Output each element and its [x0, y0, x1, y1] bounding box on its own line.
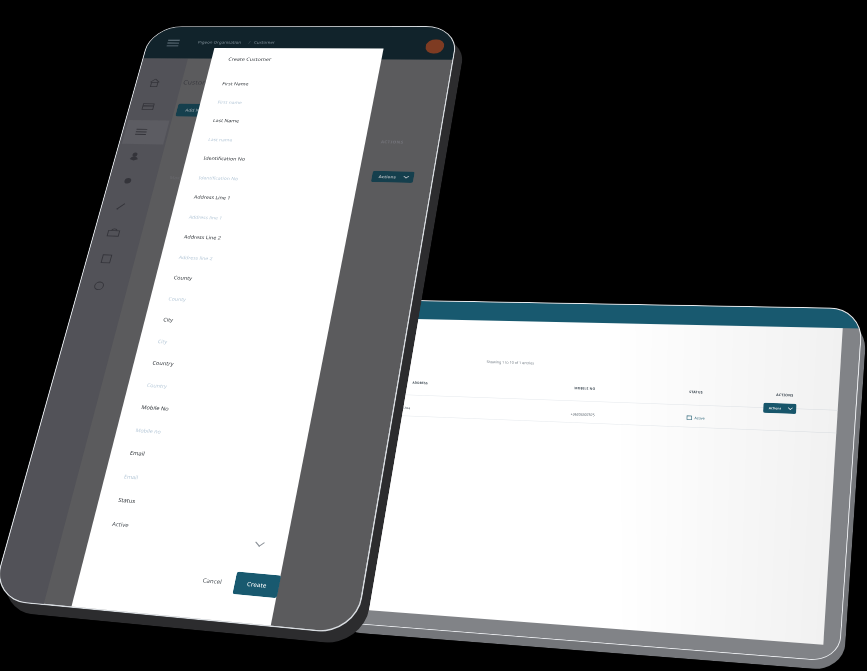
staticText: Country — [146, 382, 168, 389]
staticText: Cancel — [202, 576, 223, 586]
button[interactable]: Add New — [175, 103, 216, 117]
staticText: +36203307375 — [571, 412, 595, 417]
staticText: ADDRESS — [412, 380, 428, 385]
staticText: City — [162, 316, 174, 323]
staticText: 1, Sterndf Imre Utca — [379, 404, 410, 410]
staticText: Create — [246, 580, 267, 590]
staticText: CUSTOMER — [205, 141, 232, 146]
staticText: Identification No — [198, 175, 239, 181]
staticText: ACTIONS — [776, 392, 794, 398]
button[interactable]: Create — [232, 571, 281, 598]
staticText: Add New — [185, 107, 207, 113]
staticText: Actions — [769, 406, 781, 410]
button[interactable]: Sidebar item 1 — [138, 72, 171, 94]
staticText: ACTIONS — [380, 139, 404, 145]
button[interactable]: Sidebar item 8 — [89, 246, 124, 272]
staticText: Address Line 2 — [183, 233, 222, 241]
staticText: Address Line 1 — [193, 194, 231, 201]
button[interactable] — [306, 391, 838, 433]
staticText: Pigeon Organisation — [197, 40, 242, 45]
button[interactable]: Sidebar item 4 — [117, 145, 151, 169]
staticText: Email — [129, 449, 146, 458]
staticText: First Name — [222, 81, 249, 87]
staticText: Identification No — [203, 155, 246, 162]
staticText: County — [173, 274, 193, 282]
staticText: / — [248, 40, 251, 45]
staticText: First name — [217, 99, 243, 105]
staticText: Status — [117, 496, 136, 505]
staticText: Create Customer — [228, 56, 272, 62]
button[interactable]: Cancel — [194, 571, 231, 591]
staticText: Active — [111, 520, 130, 529]
staticText: STATUS — [689, 389, 703, 395]
staticText: Customer — [182, 78, 217, 86]
staticText: Showing 1 to 10 of 1 entries — [486, 359, 534, 365]
button[interactable]: Sidebar item 7 — [96, 220, 131, 245]
staticText: Address line 2 — [178, 254, 213, 261]
button[interactable]: Account — [424, 39, 445, 54]
other: Status dropdown — [255, 542, 264, 547]
staticText: Mobile No — [141, 403, 170, 412]
staticText: Customer — [253, 40, 276, 45]
button[interactable]: Sidebar item 6 — [104, 194, 138, 219]
staticText: Country — [152, 359, 174, 367]
button[interactable]: Sidebar item 2 — [132, 95, 165, 118]
button[interactable]: Actions — [763, 403, 797, 414]
staticText: Actions — [378, 174, 396, 179]
staticText: Last name — [208, 137, 233, 143]
staticText: Maxi — [169, 175, 182, 181]
staticText: Active — [694, 416, 705, 421]
staticText: Email — [123, 473, 139, 481]
button[interactable]: Sidebar item 5 — [111, 169, 145, 193]
button[interactable]: Actions — [371, 171, 415, 183]
staticText: Mobile no — [135, 427, 162, 435]
button[interactable]: Sidebar item 9 — [81, 273, 117, 299]
staticText: Last Name — [212, 117, 240, 124]
staticText: City — [157, 338, 168, 345]
staticText: MOBILE NO — [574, 386, 595, 391]
other: Menu — [166, 40, 180, 46]
staticText: Address line 1 — [188, 214, 223, 221]
button[interactable]: Sidebar item 3 — [124, 120, 158, 144]
staticText: County — [168, 295, 187, 302]
